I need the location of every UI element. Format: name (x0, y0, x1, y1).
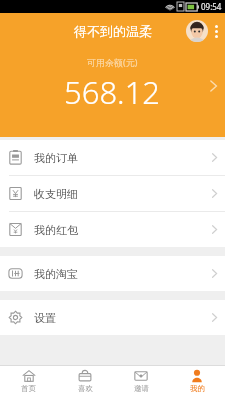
button[interactable]: 喜欢 (57, 366, 113, 400)
button[interactable]: 设置 (0, 300, 225, 335)
staticText: 收支明细 (34, 187, 78, 201)
staticText: 设置 (34, 311, 56, 325)
staticText: 邀请 (134, 384, 149, 393)
button[interactable]: Balance details (201, 66, 225, 106)
button[interactable]: 我的红包 (0, 212, 225, 247)
button[interactable]: 我的订单 (0, 140, 225, 175)
staticText: 09:54 (201, 1, 222, 12)
staticText: 我的 (190, 384, 205, 393)
staticText: 我的订单 (34, 151, 78, 165)
staticText: 我的红包 (34, 223, 78, 237)
button[interactable]: 首页 (0, 366, 57, 400)
staticText: 我的淘宝 (34, 267, 78, 281)
button[interactable]: 邀请 (113, 366, 169, 400)
button[interactable]: 收支明细 (0, 176, 225, 211)
staticText: 可用余额(元) (87, 56, 138, 68)
button[interactable]: 我的 (169, 366, 225, 400)
staticText: 首页 (21, 384, 36, 393)
staticText: 得不到的温柔 (74, 23, 152, 39)
button[interactable]: Profile avatar (186, 20, 208, 42)
staticText: 喜欢 (78, 384, 93, 393)
button[interactable]: 我的淘宝 (0, 256, 225, 291)
staticText: 568.12 (64, 71, 161, 113)
button[interactable]: More options (211, 20, 221, 42)
